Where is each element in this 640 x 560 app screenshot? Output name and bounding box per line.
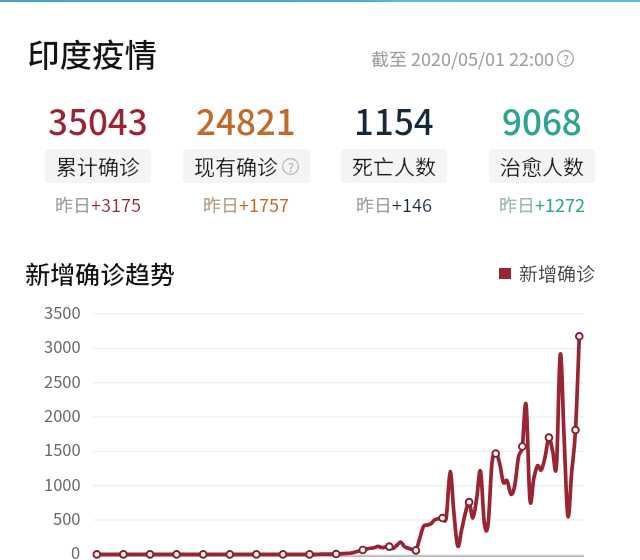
button[interactable]: 新增确诊 bbox=[499, 259, 596, 287]
staticText: 500 bbox=[53, 506, 81, 530]
staticText: 2000 bbox=[44, 403, 81, 427]
staticText: 现有确诊 bbox=[194, 151, 278, 181]
staticText: 累计确诊 bbox=[56, 151, 140, 181]
staticText: ? bbox=[563, 50, 569, 67]
staticText: 新增确诊 bbox=[519, 259, 596, 287]
staticText: 死亡人数 bbox=[352, 151, 436, 181]
button[interactable]: 截至 2020/05/01 22:00 bbox=[371, 45, 574, 71]
staticText: 24821 bbox=[196, 94, 296, 145]
staticText: ? bbox=[288, 158, 294, 175]
staticText: 昨日+146 bbox=[356, 191, 432, 217]
staticText: 昨日+1272 bbox=[499, 191, 585, 217]
staticText: 1154 bbox=[354, 94, 434, 145]
other: More info bbox=[557, 50, 574, 67]
staticText: 2500 bbox=[44, 369, 81, 393]
staticText: 35043 bbox=[48, 94, 148, 145]
staticText: 1500 bbox=[44, 437, 81, 461]
staticText: 印度疫情 bbox=[27, 29, 158, 76]
staticText: 3500 bbox=[44, 300, 81, 324]
staticText: 新增确诊趋势 bbox=[25, 255, 176, 291]
button[interactable]: 24821 bbox=[172, 94, 320, 217]
staticText: 9068 bbox=[502, 94, 582, 145]
staticText: 1000 bbox=[44, 472, 81, 496]
staticText: 截至 2020/05/01 22:00 bbox=[371, 45, 555, 71]
staticText: 0 bbox=[71, 540, 81, 560]
staticText: 3000 bbox=[44, 334, 81, 358]
other: More info bbox=[282, 158, 299, 175]
staticText: 昨日+3175 bbox=[55, 191, 141, 217]
staticText: 昨日+1757 bbox=[203, 191, 289, 217]
button[interactable]: 35043 bbox=[24, 94, 172, 217]
button[interactable]: 1154 bbox=[320, 94, 468, 217]
button[interactable]: 9068 bbox=[468, 94, 616, 217]
staticText: 治愈人数 bbox=[500, 151, 584, 181]
